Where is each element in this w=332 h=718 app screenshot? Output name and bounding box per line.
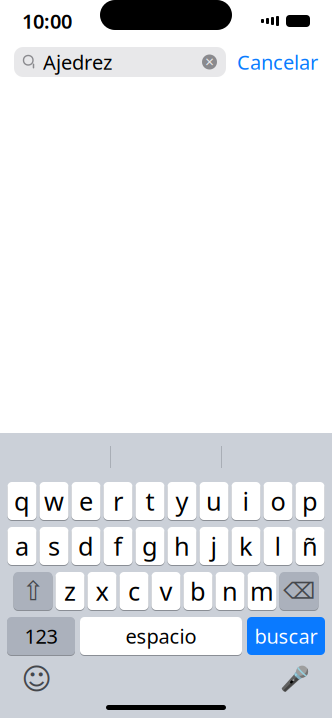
staticText: ñ bbox=[302, 529, 318, 563]
button[interactable]: Borrar bbox=[279, 571, 318, 611]
staticText: buscar bbox=[254, 623, 317, 649]
staticText: Ajedrez bbox=[43, 49, 112, 75]
button[interactable]: Cancelar bbox=[237, 49, 318, 75]
button[interactable]: d bbox=[71, 526, 100, 566]
button[interactable]: q bbox=[7, 481, 36, 521]
staticText: Cancelar bbox=[237, 49, 318, 75]
button[interactable]: t bbox=[135, 481, 164, 521]
staticText: z bbox=[64, 574, 76, 608]
button[interactable]: a bbox=[7, 526, 36, 566]
staticText: s bbox=[48, 529, 60, 563]
staticText: l bbox=[274, 529, 281, 563]
button[interactable]: Mayúsculas bbox=[13, 571, 52, 611]
staticText: 🎤 bbox=[280, 665, 310, 693]
staticText: f bbox=[113, 529, 122, 563]
button[interactable]: n bbox=[215, 571, 244, 611]
button[interactable]: s bbox=[39, 526, 68, 566]
staticText: t bbox=[145, 484, 154, 518]
staticText: x bbox=[95, 574, 108, 608]
staticText: 10:00 bbox=[22, 8, 72, 34]
button[interactable]: l bbox=[263, 526, 292, 566]
staticText: ⇧ bbox=[22, 576, 44, 606]
staticText: v bbox=[159, 574, 172, 608]
button[interactable]: 123 bbox=[7, 616, 75, 656]
button[interactable]: espacio bbox=[80, 616, 242, 656]
button[interactable]: r bbox=[103, 481, 132, 521]
button[interactable]: Emoji bbox=[20, 662, 54, 696]
button[interactable]: h bbox=[167, 526, 196, 566]
staticText: e bbox=[79, 484, 93, 518]
staticText: r bbox=[113, 484, 123, 518]
button[interactable]: Ajedrez bbox=[14, 47, 226, 77]
staticText: o bbox=[270, 484, 285, 518]
button[interactable]: u bbox=[199, 481, 228, 521]
staticText: ✕ bbox=[204, 55, 214, 69]
staticText: i bbox=[242, 484, 249, 518]
staticText: c bbox=[128, 574, 140, 608]
staticText: y bbox=[175, 484, 188, 518]
button[interactable]: w bbox=[39, 481, 68, 521]
button[interactable]: p bbox=[295, 481, 324, 521]
button[interactable]: i bbox=[231, 481, 260, 521]
button[interactable]: g bbox=[135, 526, 164, 566]
button[interactable]: v bbox=[151, 571, 180, 611]
button[interactable]: ñ bbox=[295, 526, 324, 566]
button[interactable]: Dictado bbox=[278, 662, 312, 696]
staticText: 123 bbox=[24, 623, 57, 649]
staticText: m bbox=[250, 574, 274, 608]
button[interactable]: e bbox=[71, 481, 100, 521]
button[interactable]: z bbox=[55, 571, 84, 611]
staticText: n bbox=[222, 574, 238, 608]
staticText: b bbox=[190, 574, 206, 608]
button[interactable]: f bbox=[103, 526, 132, 566]
button[interactable]: buscar bbox=[247, 616, 325, 656]
staticText: ⌫ bbox=[283, 578, 315, 604]
button[interactable]: y bbox=[167, 481, 196, 521]
staticText: a bbox=[15, 529, 29, 563]
staticText: k bbox=[239, 529, 253, 563]
staticText: p bbox=[302, 484, 318, 518]
button[interactable]: c bbox=[119, 571, 148, 611]
button[interactable]: j bbox=[199, 526, 228, 566]
staticText: j bbox=[210, 529, 217, 563]
staticText: u bbox=[206, 484, 222, 518]
staticText: d bbox=[78, 529, 94, 563]
button[interactable]: o bbox=[263, 481, 292, 521]
button[interactable]: m bbox=[247, 571, 276, 611]
button[interactable]: k bbox=[231, 526, 260, 566]
staticText: h bbox=[174, 529, 190, 563]
button[interactable]: b bbox=[183, 571, 212, 611]
staticText: w bbox=[44, 484, 64, 518]
button[interactable]: x bbox=[87, 571, 116, 611]
staticText: g bbox=[142, 529, 158, 563]
staticText: espacio bbox=[125, 623, 196, 649]
staticText: q bbox=[14, 484, 30, 518]
staticText: ☺ bbox=[21, 662, 52, 696]
